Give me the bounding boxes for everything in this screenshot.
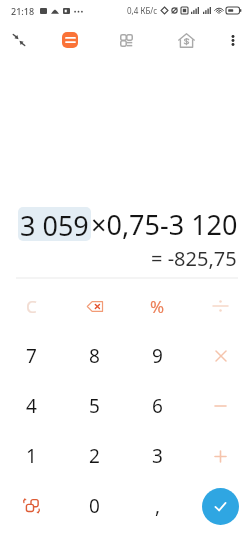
staticText: 5 <box>89 393 100 419</box>
button[interactable]: 7 <box>0 331 63 381</box>
staticText: ×0,75-3 120 <box>91 206 238 241</box>
button[interactable]: 5 <box>63 381 126 431</box>
staticText: 9 <box>152 343 163 369</box>
staticText: 7 <box>26 343 37 369</box>
staticText: = -825,75 <box>151 245 237 272</box>
staticText: 2 <box>89 443 100 469</box>
button[interactable]: C <box>0 281 63 331</box>
button[interactable]: , <box>126 481 189 531</box>
staticText: 21:18 <box>11 5 35 17</box>
button[interactable]: 6 <box>126 381 189 431</box>
button[interactable]: 4 <box>0 381 63 431</box>
staticText: 1 <box>26 443 37 469</box>
button[interactable]: Equals <box>202 488 239 525</box>
button[interactable]: 8 <box>63 331 126 381</box>
button[interactable]: 1 <box>0 431 63 481</box>
button[interactable]: Multiply <box>189 331 252 381</box>
button[interactable]: Collapse <box>0 21 38 59</box>
button[interactable]: Plus <box>189 431 252 481</box>
staticText: 6 <box>152 393 163 419</box>
staticText: 0 <box>89 493 100 519</box>
staticText: % <box>150 295 165 318</box>
staticText: 3 <box>152 443 163 469</box>
staticText: 8 <box>89 343 100 369</box>
button[interactable]: % <box>126 281 189 331</box>
staticText: C <box>26 295 37 318</box>
staticText: 0,4 КБ/с <box>127 5 158 16</box>
staticText: 3 059 <box>20 207 89 241</box>
button[interactable]: Minus <box>189 381 252 431</box>
staticText: , <box>155 493 161 519</box>
staticText: 4 <box>26 393 37 419</box>
button[interactable]: Backspace <box>63 281 126 331</box>
button[interactable]: Convert units <box>0 481 63 531</box>
button[interactable]: 9 <box>126 331 189 381</box>
button[interactable]: Equals mode <box>51 21 89 59</box>
button[interactable]: Mortgage <box>167 21 205 59</box>
button[interactable]: Divide <box>189 281 252 331</box>
button[interactable]: 3 <box>126 431 189 481</box>
button[interactable]: Apps <box>107 21 145 59</box>
button[interactable]: More options <box>214 21 252 59</box>
button[interactable]: 0 <box>63 481 126 531</box>
button[interactable]: 2 <box>63 431 126 481</box>
